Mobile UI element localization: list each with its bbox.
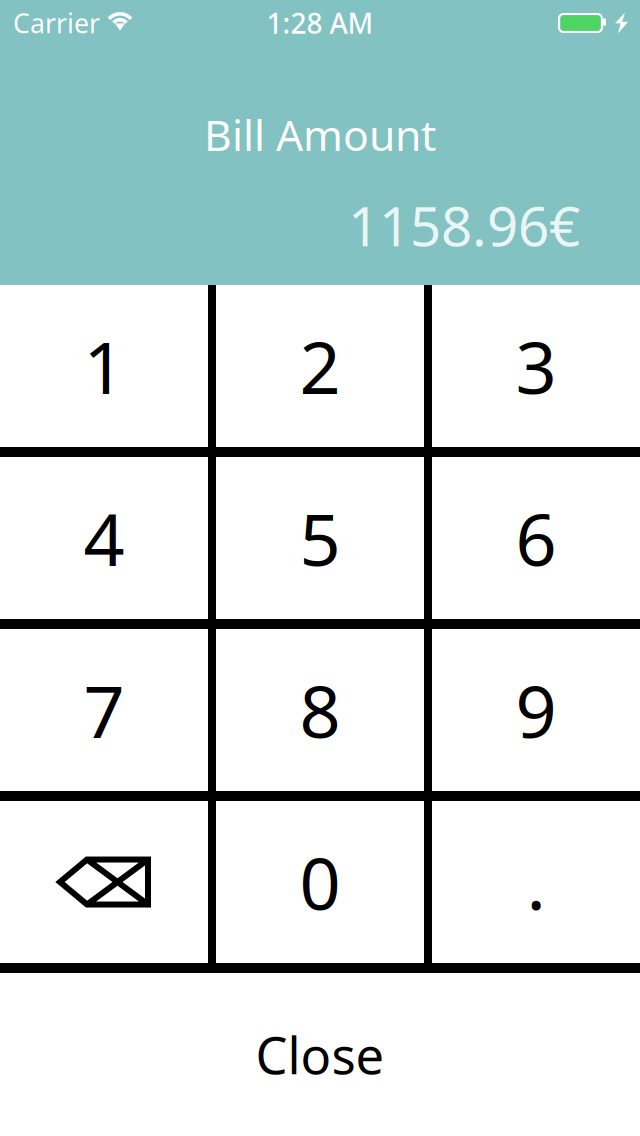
button[interactable]: 5	[216, 457, 424, 619]
button[interactable]: 8	[216, 629, 424, 791]
staticText: 2	[299, 318, 340, 414]
staticText: Bill Amount	[204, 106, 436, 163]
staticText: .	[526, 834, 545, 930]
button[interactable]: 9	[432, 629, 640, 791]
button[interactable]: 6	[432, 457, 640, 619]
staticText: 1158.96€	[348, 189, 580, 261]
staticText: 6	[515, 490, 556, 586]
staticText: 8	[299, 662, 340, 758]
button[interactable]: .	[432, 801, 640, 963]
button[interactable]: 3	[432, 285, 640, 447]
staticText: 9	[515, 662, 556, 758]
button[interactable]: Close	[0, 973, 640, 1136]
button[interactable]: 1	[0, 285, 208, 447]
button[interactable]: 0	[216, 801, 424, 963]
staticText: 0	[299, 834, 340, 930]
staticText: 1	[83, 318, 124, 414]
button[interactable]: Delete	[0, 801, 208, 963]
staticText: 3	[515, 318, 556, 414]
staticText: Close	[255, 1021, 384, 1088]
button[interactable]: 7	[0, 629, 208, 791]
staticText: 1:28 AM	[266, 4, 373, 42]
staticText: Carrier	[13, 5, 100, 41]
staticText: 7	[83, 662, 124, 758]
staticText: 4	[83, 490, 124, 586]
staticText: 5	[299, 490, 340, 586]
button[interactable]: 2	[216, 285, 424, 447]
button[interactable]: 4	[0, 457, 208, 619]
